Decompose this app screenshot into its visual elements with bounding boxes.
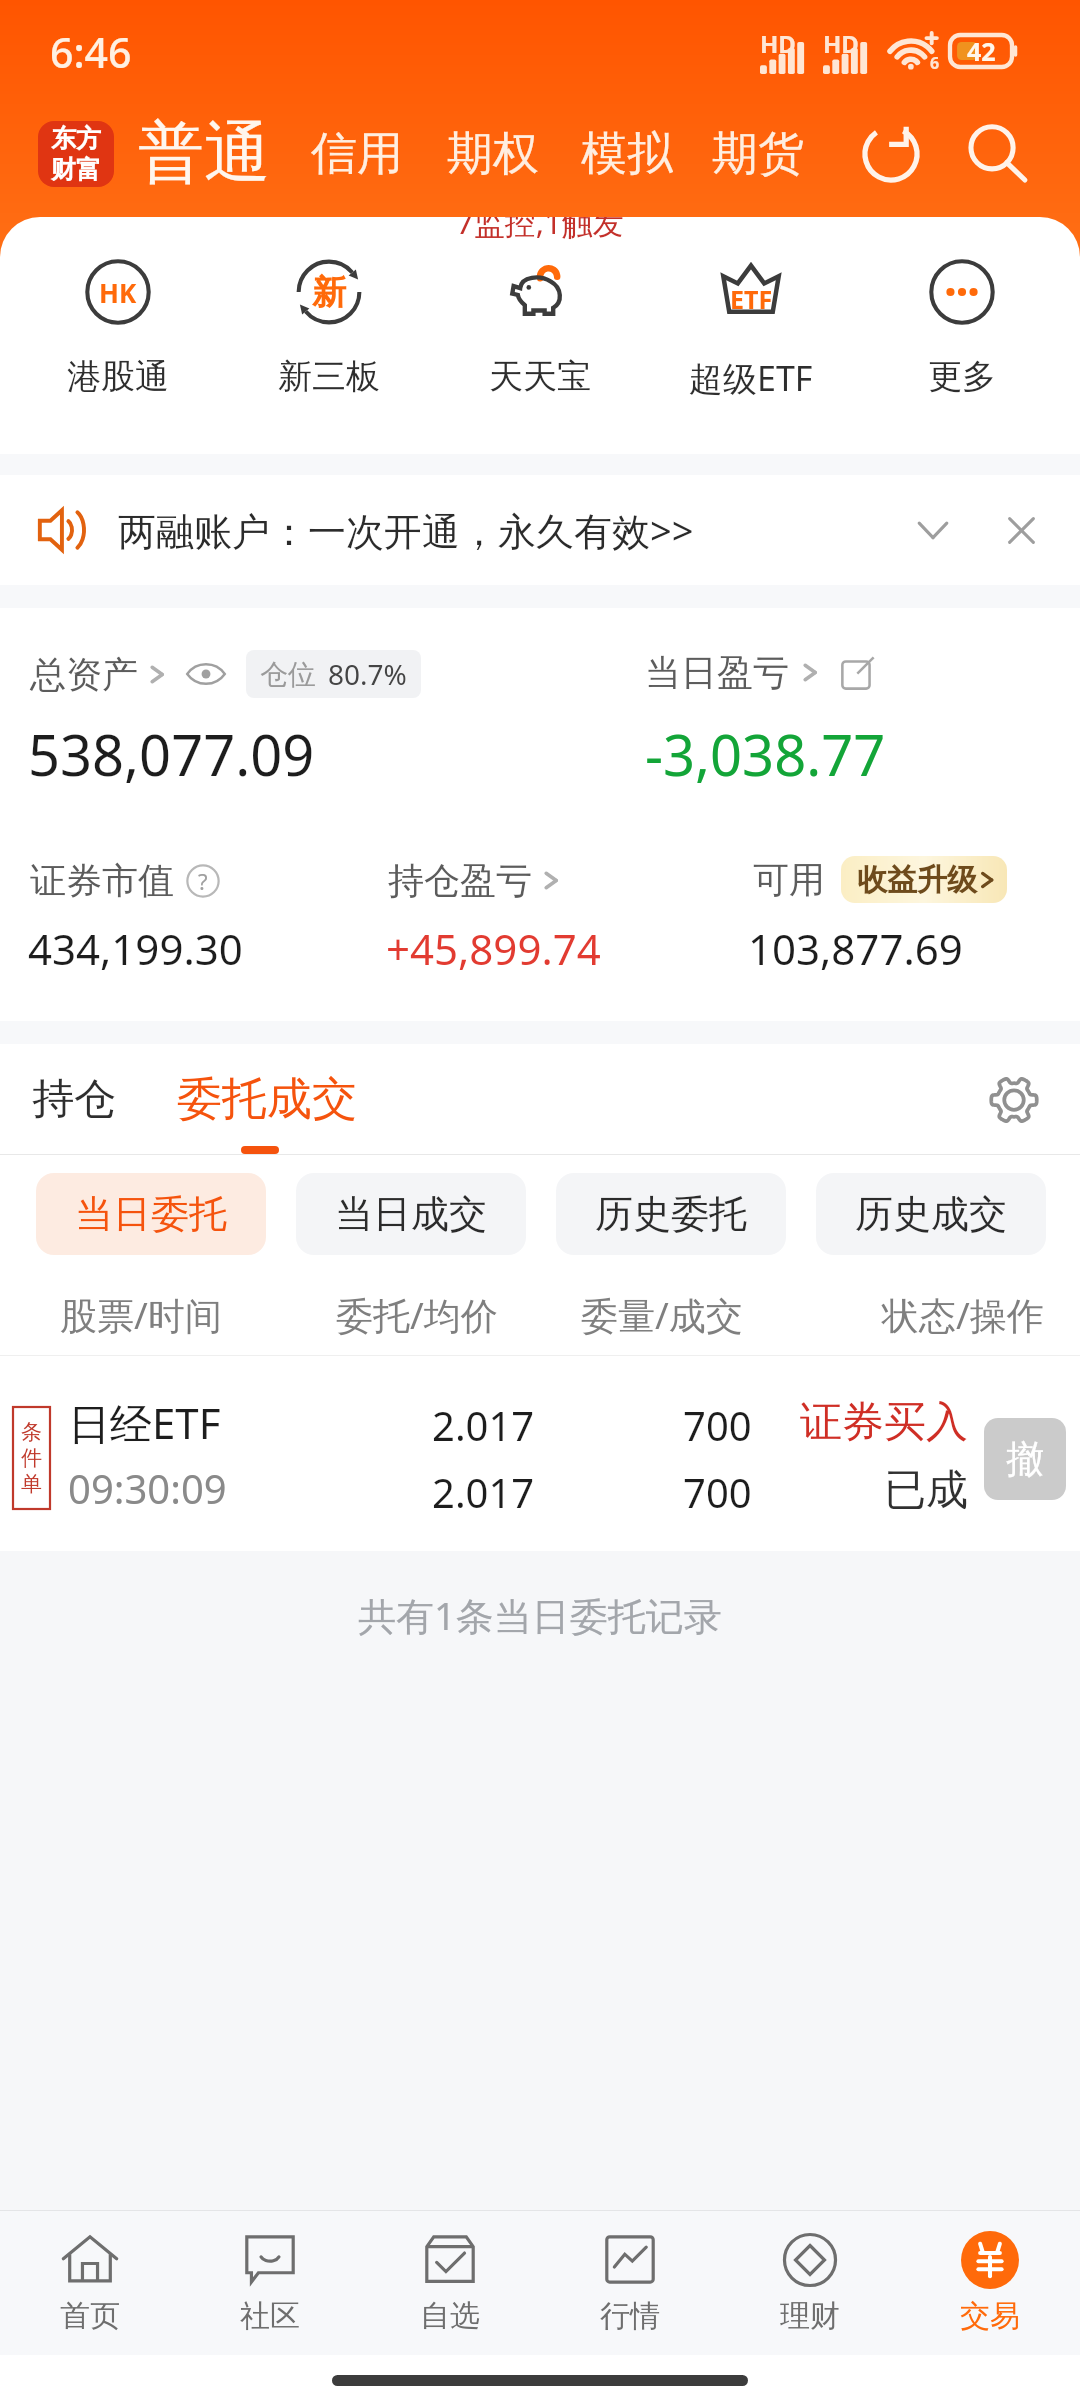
staticText: ?	[198, 866, 208, 896]
staticText: HK	[99, 275, 137, 310]
staticText: 当日盈亏	[645, 650, 789, 695]
staticText: 700	[683, 1398, 752, 1452]
staticText: 新三板	[278, 355, 380, 398]
staticText: 收益升级	[857, 861, 977, 899]
button[interactable]: 收益升级	[841, 856, 1007, 903]
staticText: 可用	[753, 857, 825, 902]
button[interactable]: HK	[25, 259, 211, 398]
staticText: 共有1条当日委托记录	[358, 1589, 722, 1641]
staticText: 仓位	[260, 657, 316, 692]
staticText: 日经ETF	[68, 1394, 221, 1451]
staticText: 当日成交	[335, 1190, 487, 1238]
button[interactable]: Expand	[898, 495, 968, 565]
button[interactable]: 撤	[984, 1418, 1066, 1500]
staticText: 总资产	[30, 652, 138, 697]
staticText: 委托/均价	[336, 1289, 498, 1340]
staticText: 538,077.09	[28, 716, 315, 792]
staticText: 09:30:09	[68, 1461, 227, 1515]
button[interactable]: 更多	[869, 259, 1055, 398]
staticText: 持仓	[32, 1073, 116, 1126]
staticText: 2.017	[432, 1465, 535, 1519]
staticText: 6	[930, 52, 940, 74]
button[interactable]: ETF	[658, 259, 844, 401]
staticText: 两融账户：一次开通，永久有效>>	[118, 504, 694, 556]
button[interactable]: 期货	[712, 125, 804, 183]
staticText: 103,877.69	[748, 920, 963, 977]
staticText: 社区	[240, 2297, 300, 2335]
staticText: 财富	[51, 154, 101, 185]
staticText: 理财	[780, 2297, 840, 2335]
staticText: HD	[823, 27, 859, 60]
button[interactable]: 模拟	[581, 125, 673, 183]
staticText: 更多	[928, 355, 996, 398]
button[interactable]: 条	[0, 1356, 1080, 1551]
staticText: 已成	[884, 1464, 968, 1517]
button[interactable]: 自选	[360, 2211, 540, 2355]
button[interactable]: 总资产	[30, 650, 421, 698]
staticText: 首页	[60, 2297, 120, 2335]
staticText: 42	[967, 34, 996, 66]
staticText: 新	[312, 271, 346, 314]
button[interactable]: 社区	[180, 2211, 360, 2355]
button[interactable]: 期权	[447, 125, 539, 183]
button[interactable]: 首页	[0, 2211, 180, 2355]
staticText: 历史委托	[595, 1190, 747, 1238]
staticText: 当日委托	[75, 1190, 227, 1238]
button[interactable]: Search	[957, 114, 1037, 194]
staticText: 股票/时间	[60, 1289, 222, 1340]
staticText: 条	[21, 1419, 42, 1445]
staticText: 委量/成交	[581, 1289, 743, 1340]
staticText: 件	[21, 1445, 42, 1471]
button[interactable]: 委托成交	[175, 1071, 359, 1128]
staticText: 状态/操作	[882, 1289, 1044, 1340]
button[interactable]: 当日委托	[36, 1173, 266, 1255]
staticText: HD	[760, 27, 796, 60]
staticText: 单	[21, 1471, 42, 1497]
staticText: 2.017	[432, 1398, 535, 1452]
staticText: 证券市值	[30, 858, 174, 903]
staticText: +45,899.74	[386, 920, 601, 977]
button[interactable]: 历史成交	[816, 1173, 1046, 1255]
staticText: 7监控,1触发	[456, 217, 624, 243]
button[interactable]: 信用	[311, 125, 403, 183]
button[interactable]: Close	[986, 495, 1056, 565]
staticText: 东方	[51, 123, 101, 154]
button[interactable]: 当日盈亏	[645, 650, 875, 695]
staticText: 天天宝	[489, 355, 591, 398]
button[interactable]: 新	[236, 259, 422, 398]
staticText: ETF	[730, 282, 773, 316]
button[interactable]: 普通	[138, 113, 270, 196]
staticText: 行情	[600, 2297, 660, 2335]
staticText: 434,199.30	[28, 920, 243, 977]
staticText: 撤	[1006, 1435, 1044, 1483]
button[interactable]: 持仓	[30, 1073, 118, 1126]
button[interactable]: 历史委托	[556, 1173, 786, 1255]
staticText: 自选	[420, 2297, 480, 2335]
button[interactable]: 天天宝	[447, 259, 633, 398]
button[interactable]: 理财	[720, 2211, 900, 2355]
button[interactable]: 当日成交	[296, 1173, 526, 1255]
button[interactable]: 交易	[900, 2211, 1080, 2355]
staticText: 6:46	[50, 24, 132, 80]
staticText: 700	[683, 1465, 752, 1519]
staticText: 港股通	[67, 355, 169, 398]
staticText: 交易	[960, 2297, 1020, 2335]
button[interactable]: 东方	[38, 121, 114, 187]
staticText: -3,038.77	[645, 716, 886, 792]
staticText: 持仓盈亏	[388, 858, 532, 903]
staticText: 证券买入	[800, 1396, 968, 1449]
staticText: 80.7%	[328, 655, 407, 693]
staticText: 委托成交	[177, 1071, 357, 1128]
button[interactable]: 持仓盈亏	[388, 858, 562, 903]
button[interactable]: Settings	[976, 1062, 1052, 1138]
button[interactable]: Refresh	[851, 114, 931, 194]
staticText: 超级ETF	[689, 355, 813, 401]
button[interactable]: 两融账户：一次开通，永久有效>>	[0, 475, 1080, 585]
staticText: 历史成交	[855, 1190, 1007, 1238]
button[interactable]: 行情	[540, 2211, 720, 2355]
